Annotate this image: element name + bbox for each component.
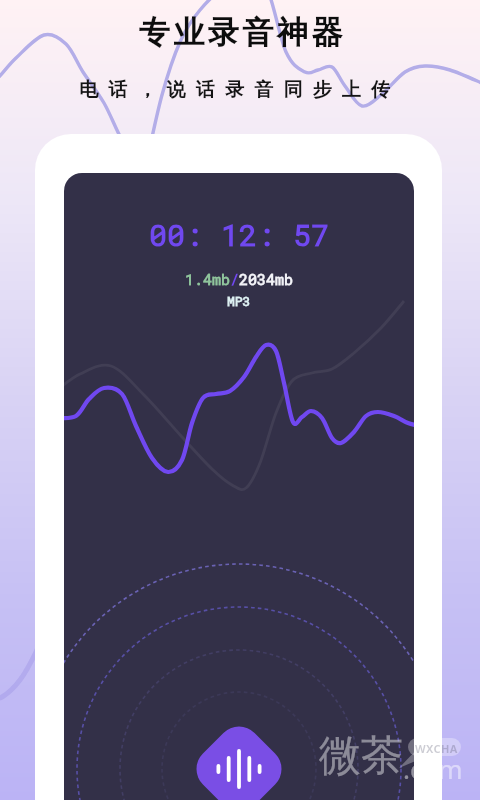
staticText: .com [403,751,463,786]
staticText: MP3 [227,292,251,309]
staticText: 专业录音神器 [137,13,344,52]
staticText: 1.4mb/2034mb [185,269,294,289]
staticText: 微茶 [319,730,403,783]
staticText: 00: 12: 57 [149,215,330,255]
staticText: 电话，说话录音同步上传 [79,78,401,102]
staticText: WXCHA [415,741,458,756]
button[interactable]: Record [184,714,294,800]
